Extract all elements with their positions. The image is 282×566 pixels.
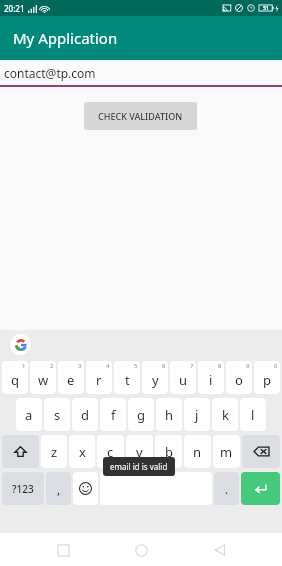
- button[interactable]: a: [16, 398, 42, 431]
- button[interactable]: s: [44, 398, 70, 431]
- staticText: j: [195, 406, 199, 424]
- staticText: g: [137, 406, 145, 424]
- button[interactable]: x: [69, 435, 95, 468]
- staticText: a: [25, 406, 33, 424]
- button[interactable]: m: [213, 435, 240, 468]
- button[interactable]: Comma: [46, 472, 71, 505]
- button[interactable]: 1: [2, 361, 28, 394]
- button[interactable]: b: [155, 435, 182, 468]
- staticText: x: [79, 443, 86, 461]
- staticText: m: [220, 443, 233, 461]
- button[interactable]: Home: [125, 534, 157, 566]
- staticText: p: [263, 371, 271, 389]
- staticText: i: [209, 371, 213, 389]
- staticText: d: [81, 406, 89, 424]
- button[interactable]: Back: [204, 534, 236, 566]
- button[interactable]: d: [72, 398, 98, 431]
- staticText: z: [51, 443, 58, 461]
- staticText: 5: [134, 362, 138, 370]
- button[interactable]: contact@tp.com: [0, 60, 282, 87]
- button[interactable]: Emoji: [73, 472, 98, 505]
- staticText: f: [111, 406, 116, 424]
- staticText: 2: [50, 362, 54, 370]
- staticText: k: [222, 406, 229, 424]
- staticText: l: [251, 406, 255, 424]
- button[interactable]: Recent apps: [47, 534, 79, 566]
- staticText: .: [225, 481, 229, 497]
- staticText: e: [67, 371, 75, 389]
- staticText: u: [179, 371, 188, 389]
- staticText: ?123: [12, 482, 34, 496]
- button[interactable]: j: [184, 398, 210, 431]
- button[interactable]: c: [97, 435, 124, 468]
- staticText: c: [107, 443, 114, 461]
- staticText: b: [165, 443, 173, 461]
- button[interactable]: Space: [100, 472, 212, 505]
- button[interactable]: 8: [198, 361, 224, 394]
- button[interactable]: v: [126, 435, 153, 468]
- staticText: q: [11, 371, 19, 389]
- staticText: 7: [190, 362, 194, 370]
- button[interactable]: 3: [58, 361, 84, 394]
- button[interactable]: 5: [114, 361, 140, 394]
- button[interactable]: Google: [10, 334, 31, 355]
- staticText: My Application: [13, 28, 118, 48]
- staticText: n: [193, 443, 202, 461]
- staticText: 8: [218, 362, 222, 370]
- button[interactable]: l: [240, 398, 266, 431]
- staticText: email id is valid: [110, 461, 168, 472]
- button[interactable]: f: [100, 398, 126, 431]
- staticText: t: [125, 371, 130, 389]
- staticText: 4: [106, 362, 110, 370]
- staticText: 0: [274, 362, 278, 370]
- button[interactable]: Period: [214, 472, 239, 505]
- button[interactable]: 7: [170, 361, 196, 394]
- staticText: s: [54, 406, 61, 424]
- staticText: o: [235, 371, 243, 389]
- staticText: 3: [78, 362, 82, 370]
- staticText: r: [96, 371, 102, 389]
- staticText: 51: [263, 5, 269, 12]
- staticText: 9: [246, 362, 250, 370]
- staticText: 1: [22, 362, 26, 370]
- staticText: 20:21: [4, 3, 25, 14]
- button[interactable]: z: [41, 435, 67, 468]
- button[interactable]: h: [156, 398, 182, 431]
- button[interactable]: n: [184, 435, 211, 468]
- button[interactable]: 0: [254, 361, 280, 394]
- staticText: ,: [57, 481, 61, 497]
- staticText: y: [152, 371, 159, 389]
- button[interactable]: 2: [30, 361, 56, 394]
- staticText: CHECK VALIDATION: [98, 110, 183, 122]
- button[interactable]: 6: [142, 361, 168, 394]
- staticText: w: [38, 371, 49, 389]
- button[interactable]: 9: [226, 361, 252, 394]
- button[interactable]: k: [212, 398, 238, 431]
- button[interactable]: 4: [86, 361, 112, 394]
- button[interactable]: Shift: [2, 435, 39, 468]
- staticText: contact@tp.com: [4, 65, 96, 81]
- staticText: h: [165, 406, 174, 424]
- staticText: v: [136, 443, 143, 461]
- button[interactable]: Backspace: [242, 435, 280, 468]
- button[interactable]: CHECK VALIDATION: [84, 102, 197, 130]
- button[interactable]: Enter: [241, 472, 280, 505]
- button[interactable]: g: [128, 398, 154, 431]
- button[interactable]: Symbols: [2, 472, 44, 505]
- staticText: 6: [162, 362, 166, 370]
